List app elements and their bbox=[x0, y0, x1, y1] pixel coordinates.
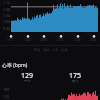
staticText: 配速 bbox=[34, 48, 41, 52]
button[interactable]: 心率 bbox=[51, 47, 60, 53]
staticText: 129 bbox=[21, 71, 34, 81]
staticText: 1.12 bbox=[3, 0, 10, 5]
staticText: 0.96 bbox=[3, 26, 10, 31]
staticText: 180 bbox=[3, 87, 10, 92]
button[interactable]: Split 4 bbox=[53, 33, 69, 42]
button[interactable]: Split 6 bbox=[86, 33, 100, 42]
staticText: 步频 bbox=[61, 48, 68, 52]
staticText: 5'12" bbox=[7, 38, 15, 42]
staticText: 心率 (bpm) bbox=[2, 62, 28, 69]
button[interactable]: Split 3 bbox=[36, 33, 52, 42]
button[interactable]: 海拔 bbox=[42, 47, 51, 53]
staticText: 平均 bbox=[24, 79, 31, 83]
staticText: 5'05" bbox=[57, 38, 65, 42]
staticText: 120 bbox=[3, 94, 10, 99]
button[interactable]: Split 2 bbox=[20, 33, 36, 42]
staticText: 最大 bbox=[72, 79, 79, 83]
button[interactable]: 步频 bbox=[60, 47, 69, 53]
staticText: 4'49" bbox=[74, 38, 82, 42]
staticText: 5'02" bbox=[24, 38, 32, 42]
staticText: 4'58" bbox=[40, 38, 48, 42]
staticText: 1.04 bbox=[3, 13, 10, 18]
staticText: 海拔 bbox=[43, 48, 50, 52]
button[interactable]: 配速 bbox=[33, 47, 42, 53]
staticText: 4'55" bbox=[90, 38, 98, 42]
button[interactable]: Split 5 bbox=[70, 33, 86, 42]
staticText: 1.00 bbox=[3, 19, 10, 24]
staticText: 心率 bbox=[52, 48, 59, 52]
staticText: 1.08 bbox=[3, 7, 10, 12]
staticText: 175 bbox=[69, 71, 82, 81]
button[interactable]: Split 1 bbox=[3, 33, 19, 42]
